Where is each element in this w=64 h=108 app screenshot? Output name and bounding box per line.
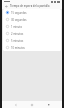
staticText: 10 minutos: [11, 46, 59, 50]
button[interactable]: Atrás: [4, 4, 9, 9]
button[interactable]: 5 minutos: [3, 37, 61, 44]
button[interactable]: 2 minutos: [3, 30, 61, 37]
staticText: 30 segundos: [11, 18, 59, 22]
staticText: Tiempo de espera de la pantalla: [10, 4, 60, 8]
button[interactable]: Atrás: [13, 102, 19, 108]
button[interactable]: 15 segundos: [3, 9, 61, 16]
staticText: 1 minuto: [11, 25, 59, 29]
staticText: 5 minutos: [11, 39, 59, 43]
button[interactable]: 1 minuto: [3, 23, 61, 30]
button[interactable]: Inicio: [29, 102, 35, 108]
staticText: 15 segundos: [11, 11, 59, 15]
button[interactable]: 30 segundos: [3, 16, 61, 23]
staticText: 2 minutos: [11, 32, 59, 36]
button[interactable]: 10 minutos: [3, 44, 61, 51]
button[interactable]: Recientes: [46, 102, 52, 108]
